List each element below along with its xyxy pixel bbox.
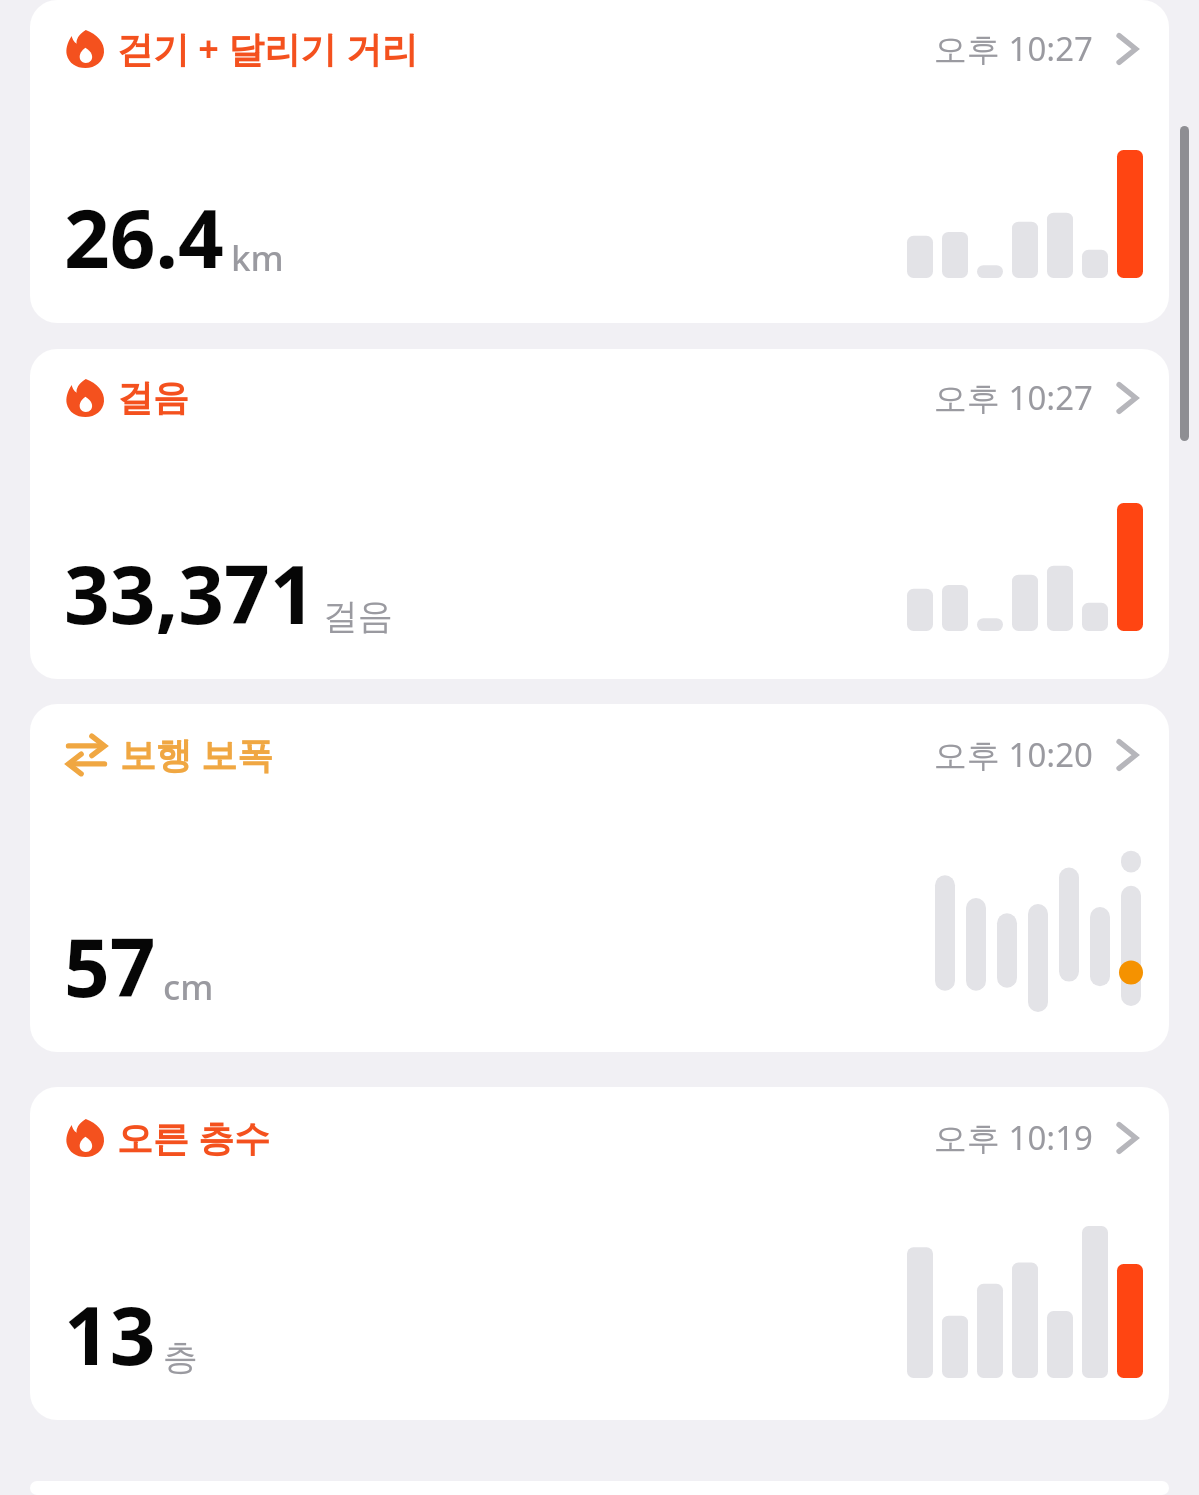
- staticText: 13: [64, 1279, 156, 1388]
- staticText: 33,371: [64, 538, 316, 647]
- staticText: 걸음: [323, 594, 393, 638]
- other: Walking step length: [66, 734, 107, 775]
- button[interactable]: Activity: [30, 349, 1169, 679]
- staticText: 오후 10:20: [934, 732, 1093, 777]
- staticText: 층: [163, 1335, 198, 1379]
- staticText: 57: [64, 911, 156, 1020]
- button[interactable]: Activity: [30, 0, 1169, 323]
- staticText: 오후 10:27: [934, 26, 1093, 71]
- staticText: 걷기 + 달리기 거리: [117, 24, 418, 73]
- other: Activity: [66, 30, 104, 68]
- staticText: 오후 10:19: [934, 1115, 1093, 1160]
- staticText: cm: [163, 963, 214, 1011]
- button[interactable]: Walking step length: [30, 704, 1169, 1052]
- staticText: 오른 층수: [117, 1113, 271, 1162]
- button[interactable]: Activity: [30, 1087, 1169, 1420]
- staticText: 오후 10:27: [934, 375, 1093, 420]
- staticText: 보행 보폭: [120, 730, 274, 779]
- other: Activity: [66, 379, 104, 417]
- staticText: 걸음: [117, 375, 189, 420]
- staticText: km: [231, 234, 284, 282]
- staticText: 26.4: [64, 182, 224, 291]
- other: Activity: [66, 1119, 104, 1157]
